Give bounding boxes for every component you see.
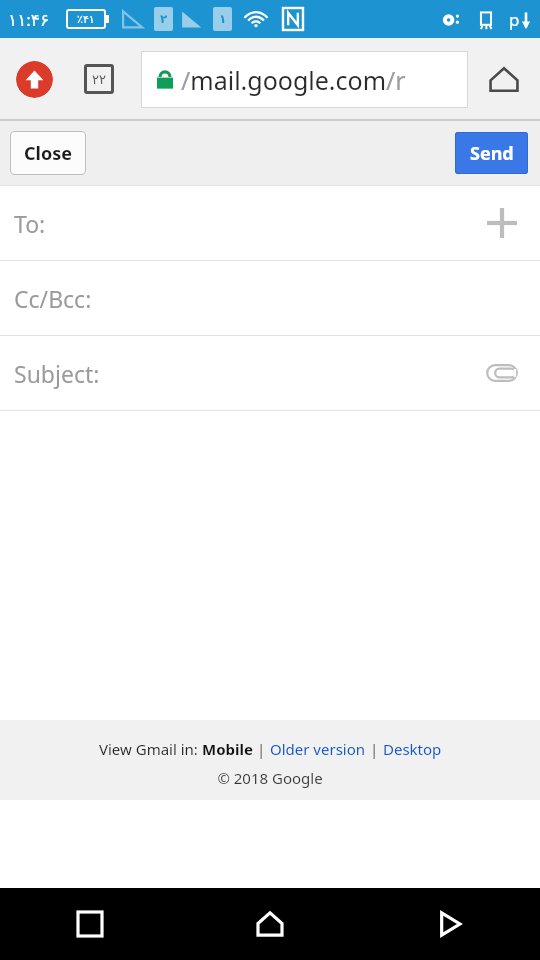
staticText: | (366, 739, 383, 759)
staticText: © 2018 Google (217, 768, 323, 788)
button[interactable]: Mobile (202, 739, 253, 759)
button[interactable]: Tabs (84, 64, 114, 94)
staticText: ٪۴۱ (77, 13, 95, 26)
staticText: ۱ (219, 12, 227, 26)
button[interactable]: Attach file (480, 351, 524, 395)
staticText: Subject: (14, 358, 100, 389)
button[interactable]: Home (484, 59, 524, 99)
staticText: Cc/Bcc: (14, 283, 92, 314)
button[interactable]: Cc/Bcc: (0, 261, 540, 335)
staticText: p (509, 8, 520, 31)
staticText: Desktop (383, 739, 442, 759)
staticText: ۲۲ (92, 72, 106, 87)
button[interactable]: Home (180, 888, 360, 960)
staticText: ۲ (160, 12, 168, 26)
staticText: Close (24, 141, 72, 166)
button[interactable]: /mail.google.com/r (141, 51, 468, 108)
button[interactable]: Close (10, 131, 86, 175)
button[interactable]: Recents (0, 888, 180, 960)
staticText: Send (470, 141, 514, 166)
staticText: Older version (270, 739, 366, 759)
button[interactable]: Back (360, 888, 540, 960)
staticText: View Gmail in: (99, 739, 202, 759)
staticText: ۱۱:۴۶ (8, 8, 50, 31)
staticText: /mail.google.com/r (181, 63, 406, 97)
button[interactable]: Desktop (383, 739, 442, 759)
staticText: To: (14, 208, 46, 239)
button[interactable]: Send (455, 132, 528, 174)
button[interactable]: Older version (270, 739, 366, 759)
button[interactable]: To: (0, 186, 540, 260)
button[interactable]: Add recipient (480, 201, 524, 245)
staticText: | (253, 739, 270, 759)
staticText: Mobile (202, 739, 253, 759)
button[interactable]: Subject: (0, 336, 540, 410)
button[interactable]: Reload (16, 61, 53, 98)
